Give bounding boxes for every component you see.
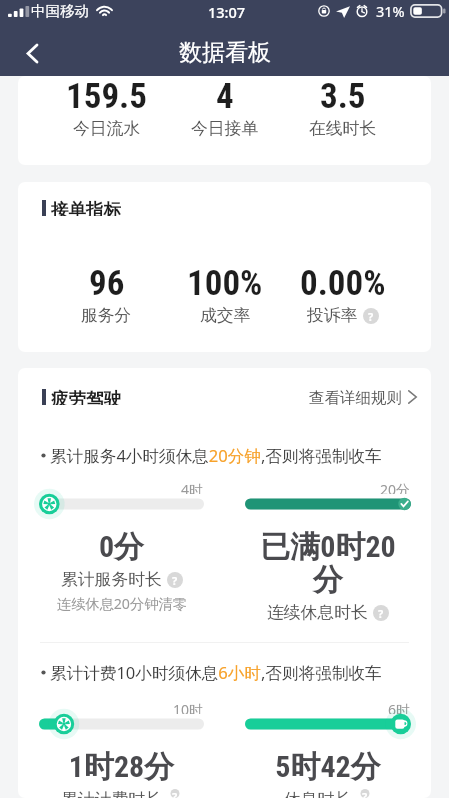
staticText: 0.00%	[300, 263, 386, 304]
staticText: 159.5	[66, 76, 147, 117]
staticText: 20分	[380, 480, 411, 494]
staticText: 4	[216, 76, 234, 117]
staticText: 在线时长	[309, 118, 377, 139]
staticText: 中国移动	[31, 2, 89, 20]
staticText: 累计服务4小时须休息20分钟,否则将强制收车	[50, 444, 382, 467]
button[interactable]: Help	[373, 605, 389, 621]
staticText: 累计计费10小时须休息6小时,否则将强制收车	[50, 661, 382, 684]
button[interactable]: Help	[167, 572, 183, 588]
staticText: 连续休息时长	[267, 602, 368, 623]
staticText: 成交率	[200, 305, 251, 326]
staticText: 连续休息20分钟清零	[57, 594, 187, 613]
staticText: 100%	[187, 263, 263, 304]
staticText: 今日流水	[73, 118, 141, 139]
button[interactable]: Help	[357, 789, 373, 798]
button[interactable]: Back	[12, 33, 52, 73]
staticText: 休息时长	[284, 789, 352, 798]
staticText: 累计计费时长	[61, 789, 162, 798]
staticText: 累计服务时长	[61, 569, 162, 590]
staticText: 0分	[42, 528, 201, 566]
staticText: 6时	[388, 700, 411, 714]
staticText: 已满0时20分	[248, 528, 408, 599]
staticText: 96	[89, 263, 125, 304]
staticText: ?	[172, 789, 178, 798]
staticText: 数据看板	[179, 38, 271, 67]
staticText: 投诉率	[307, 305, 358, 326]
button[interactable]: Help	[167, 789, 183, 798]
staticText: 疲劳驾驶	[51, 388, 121, 405]
staticText: 服务分	[81, 305, 132, 326]
staticText: 3.5	[320, 76, 366, 117]
staticText: 1时28分	[42, 748, 201, 786]
staticText: 31%	[376, 1, 405, 21]
button[interactable]: Help	[363, 308, 379, 324]
staticText: ?	[378, 606, 384, 621]
staticText: ?	[362, 789, 368, 798]
staticText: 5时42分	[248, 748, 408, 786]
staticText: 13:07	[208, 2, 246, 22]
staticText: 接单指标	[51, 199, 121, 216]
staticText: ?	[368, 309, 374, 324]
button[interactable]: 查看详细规则	[309, 388, 417, 405]
staticText: 今日接单	[191, 118, 259, 139]
staticText: 查看详细规则	[309, 388, 402, 405]
staticText: 10时	[173, 700, 204, 714]
staticText: ?	[172, 573, 178, 588]
staticText: 4时	[181, 480, 204, 494]
